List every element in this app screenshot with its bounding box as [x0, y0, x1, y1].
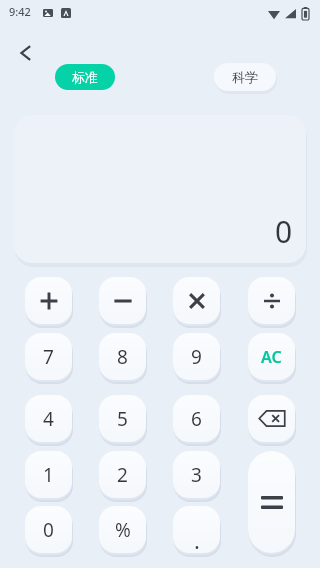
staticText: AC [261, 346, 282, 368]
button[interactable]: 标准 [55, 64, 115, 90]
button[interactable]: 6 [173, 395, 220, 442]
button[interactable]: 7 [25, 333, 72, 380]
button[interactable]: % [99, 506, 146, 553]
button[interactable]: 3 [173, 451, 220, 498]
button[interactable]: Equals [248, 451, 295, 553]
button[interactable]: 2 [99, 451, 146, 498]
button[interactable]: 4 [25, 395, 72, 442]
button[interactable]: Divide [248, 277, 295, 324]
staticText: 3 [191, 462, 202, 488]
staticText: 4 [43, 406, 54, 432]
staticText: 0 [275, 211, 293, 252]
staticText: . [194, 525, 200, 553]
staticText: 9 [191, 344, 202, 370]
button[interactable]: 1 [25, 451, 72, 498]
button[interactable]: Backspace [248, 395, 295, 442]
staticText: 1 [43, 462, 54, 488]
staticText: 5 [117, 406, 128, 432]
button[interactable]: 科学 [214, 63, 276, 91]
staticText: 8 [117, 344, 128, 370]
staticText: % [115, 517, 131, 543]
staticText: 6 [191, 406, 202, 432]
button[interactable]: Back [6, 36, 40, 70]
button[interactable]: AC [248, 333, 295, 380]
staticText: 0 [43, 517, 54, 543]
button[interactable]: Decimal point [173, 506, 220, 553]
staticText: 标准 [72, 69, 98, 85]
button[interactable]: Minus [99, 277, 146, 324]
button[interactable]: 8 [99, 333, 146, 380]
button[interactable]: Plus [25, 277, 72, 324]
staticText: 2 [117, 462, 128, 488]
button[interactable]: 0 [25, 506, 72, 553]
staticText: 7 [43, 344, 54, 370]
staticText: 科学 [232, 69, 258, 85]
button[interactable]: 5 [99, 395, 146, 442]
button[interactable]: 9 [173, 333, 220, 380]
staticText: 9:42 [9, 4, 31, 19]
button[interactable]: Multiply [173, 277, 220, 324]
